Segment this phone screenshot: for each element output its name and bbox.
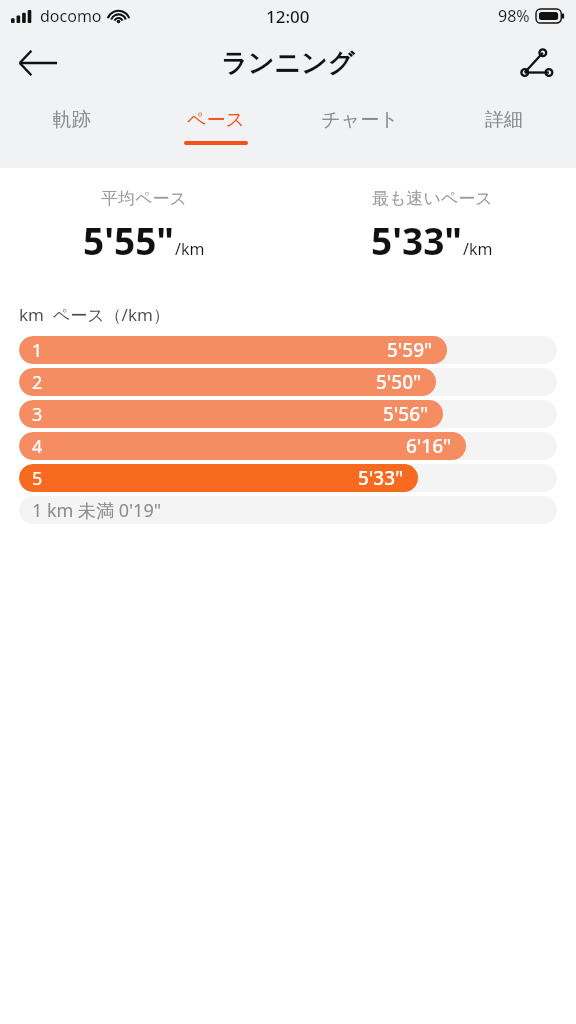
button[interactable]: ペース: [144, 94, 288, 168]
button[interactable]: 1 km 未満 0'19": [19, 496, 557, 524]
staticText: 平均ペース: [101, 188, 187, 209]
staticText: 1 km 未満 0'19": [32, 498, 162, 523]
button[interactable]: 4: [19, 432, 557, 460]
staticText: ランニング: [221, 47, 355, 80]
staticText: 5: [32, 466, 43, 491]
button[interactable]: Back: [10, 35, 66, 91]
staticText: ペース: [187, 108, 245, 132]
staticText: 詳細: [485, 108, 523, 132]
staticText: チャート: [321, 108, 399, 132]
staticText: km ペース（/km）: [19, 303, 170, 326]
button[interactable]: 5: [19, 464, 557, 492]
staticText: 5'59": [387, 337, 433, 363]
staticText: /km: [175, 238, 205, 260]
button[interactable]: 軌跡: [0, 94, 144, 168]
staticText: 3: [32, 402, 43, 427]
staticText: 5'33": [371, 215, 463, 265]
staticText: 4: [32, 434, 43, 459]
staticText: 1: [32, 338, 43, 363]
staticText: docomo: [40, 5, 102, 27]
button[interactable]: 詳細: [432, 94, 576, 168]
staticText: 98%: [498, 5, 530, 27]
staticText: 5'55": [83, 215, 175, 265]
staticText: 2: [32, 370, 43, 395]
button[interactable]: 3: [19, 400, 557, 428]
staticText: 12:00: [266, 5, 310, 28]
button[interactable]: 1: [19, 336, 557, 364]
button[interactable]: チャート: [288, 94, 432, 168]
staticText: /km: [463, 238, 493, 260]
button[interactable]: 2: [19, 368, 557, 396]
staticText: 最も速いペース: [372, 188, 493, 209]
staticText: 5'33": [358, 465, 404, 491]
button[interactable]: Route: [510, 37, 562, 89]
staticText: 6'16": [406, 433, 452, 459]
staticText: 5'50": [376, 369, 422, 395]
staticText: 軌跡: [53, 108, 91, 132]
staticText: 5'56": [383, 401, 429, 427]
